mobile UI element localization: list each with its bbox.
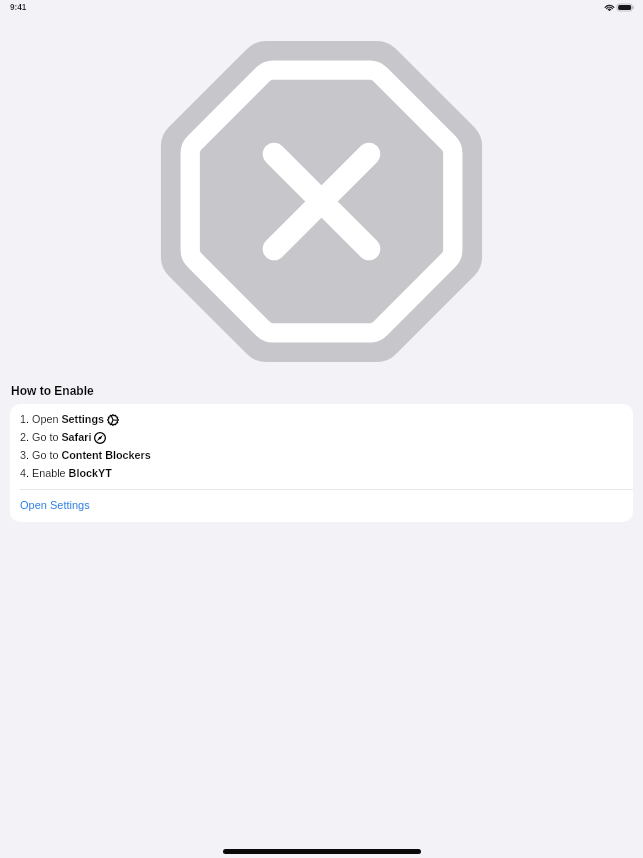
other: Wi-Fi	[605, 4, 614, 11]
staticText: 3. Go to Content Blockers	[20, 449, 151, 461]
staticText: Open Settings	[20, 499, 90, 511]
staticText: 2. Go to Safari	[20, 431, 92, 443]
staticText: 9:41	[10, 3, 27, 12]
staticText: 1. Open Settings	[20, 413, 105, 425]
other: Settings	[107, 414, 119, 426]
other: Safari	[94, 432, 106, 444]
button[interactable]: Open Settings	[10, 490, 633, 522]
other: Battery	[617, 4, 634, 11]
staticText: 4. Enable BlockYT	[20, 467, 112, 479]
other: Blocked	[161, 41, 482, 362]
staticText: How to Enable	[11, 384, 94, 397]
